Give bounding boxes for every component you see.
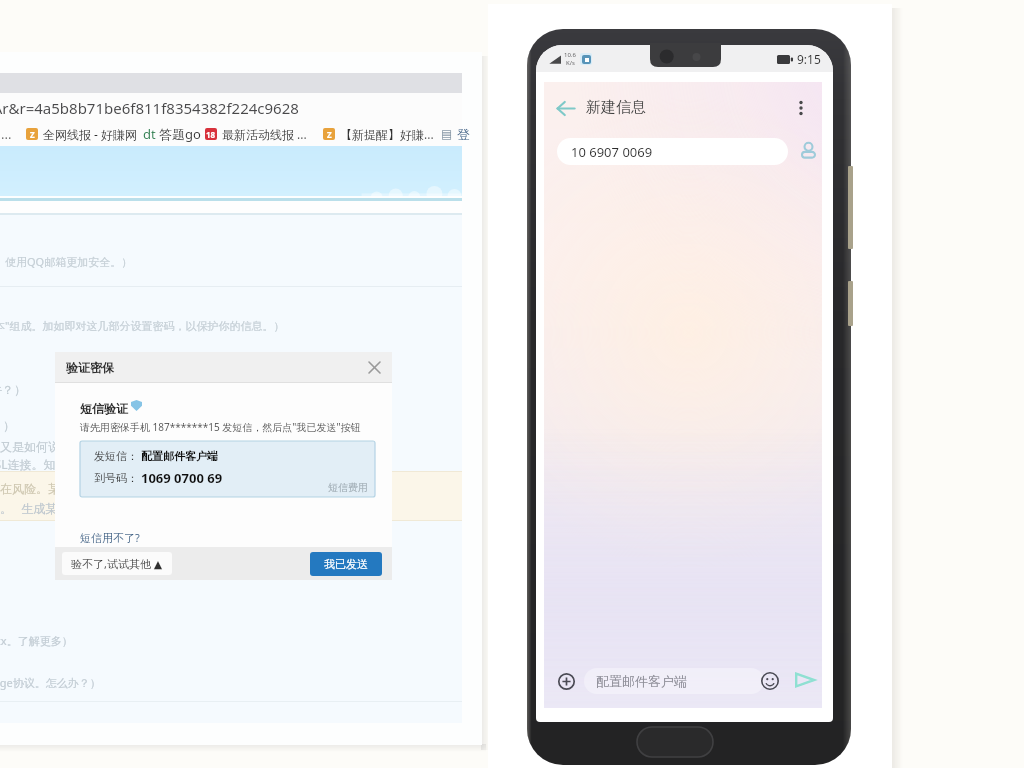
button[interactable]: 18 bbox=[205, 126, 307, 142]
button[interactable]: Close bbox=[364, 357, 384, 377]
staticText: 我已发送 bbox=[324, 557, 368, 571]
staticText: 【新提醒】好賺... bbox=[340, 126, 434, 142]
staticText: ？。 生成某 bbox=[0, 500, 58, 516]
staticText: SSL连接。知得 bbox=[0, 456, 68, 472]
staticText: K/s bbox=[566, 59, 575, 67]
staticText: xx。了解更多） bbox=[0, 633, 73, 648]
button[interactable]: Z bbox=[26, 126, 138, 142]
staticText: 18 bbox=[206, 129, 216, 140]
button[interactable]: Back bbox=[549, 92, 581, 124]
staticText: 最新活动线报 ... bbox=[222, 126, 307, 142]
button[interactable]: Select contact bbox=[795, 137, 821, 163]
staticText: Z bbox=[327, 129, 332, 140]
button[interactable]: Send bbox=[790, 665, 820, 695]
staticText: dt bbox=[143, 125, 156, 143]
staticText: 1069 0700 69 bbox=[141, 469, 223, 487]
staticText: 牛？） bbox=[0, 382, 26, 397]
button[interactable]: Home bbox=[637, 727, 713, 757]
button[interactable]: 配置邮件客户端 bbox=[584, 668, 764, 694]
staticText: nge协议。怎么办？） bbox=[0, 675, 101, 690]
button[interactable]: Add attachment bbox=[552, 667, 580, 695]
button[interactable]: 短信用不了? bbox=[80, 530, 140, 545]
staticText: 10.6 bbox=[564, 51, 576, 59]
staticText: ？） bbox=[0, 418, 15, 433]
staticText: 配置邮件客户端 bbox=[141, 449, 218, 463]
staticText: ... bbox=[1, 125, 12, 143]
button[interactable]: 验不了,试试其他 ▲ bbox=[62, 552, 172, 575]
staticText: 新建信息 bbox=[586, 98, 646, 117]
staticText: Z bbox=[30, 129, 35, 140]
staticText: 全网线报 - 好賺网 bbox=[43, 126, 138, 142]
staticText: 答题go bbox=[159, 125, 201, 143]
staticText: 请先用密保手机 187*******15 发短信，然后点"我已发送"按钮 bbox=[80, 420, 361, 434]
staticText: 登 bbox=[457, 126, 470, 142]
staticText: 它又是如何说 bbox=[0, 439, 60, 454]
staticText: 10 6907 0069 bbox=[571, 143, 653, 161]
staticText: 短信费用 bbox=[328, 481, 368, 494]
staticText: 配置邮件客户端 bbox=[596, 673, 687, 689]
staticText: 发短信： bbox=[94, 449, 138, 463]
button[interactable]: 我已发送 bbox=[310, 552, 382, 576]
staticText: 潜在风险。某 bbox=[0, 481, 60, 496]
staticText: 短信验证 bbox=[80, 401, 128, 416]
staticText: 验不了,试试其他 ▲ bbox=[71, 556, 163, 571]
staticText: ▤ bbox=[441, 127, 453, 141]
staticText: 到号码： bbox=[94, 471, 138, 485]
button[interactable]: Emoji bbox=[756, 667, 784, 695]
staticText: 9:15 bbox=[797, 51, 821, 67]
staticText: oTzZnAr&r=4a5b8b71be6f811f8354382f224c96… bbox=[0, 98, 299, 118]
button[interactable]: More options bbox=[786, 93, 816, 123]
staticText: 验证密保 bbox=[66, 360, 114, 375]
staticText: 使用QQ邮箱更加安全。） bbox=[5, 254, 133, 269]
button[interactable]: Z bbox=[323, 126, 434, 142]
button[interactable]: 10 6907 0069 bbox=[557, 138, 788, 165]
staticText: 本"组成。加如即对这几部分设置密码，以保护你的信息。） bbox=[0, 318, 285, 333]
